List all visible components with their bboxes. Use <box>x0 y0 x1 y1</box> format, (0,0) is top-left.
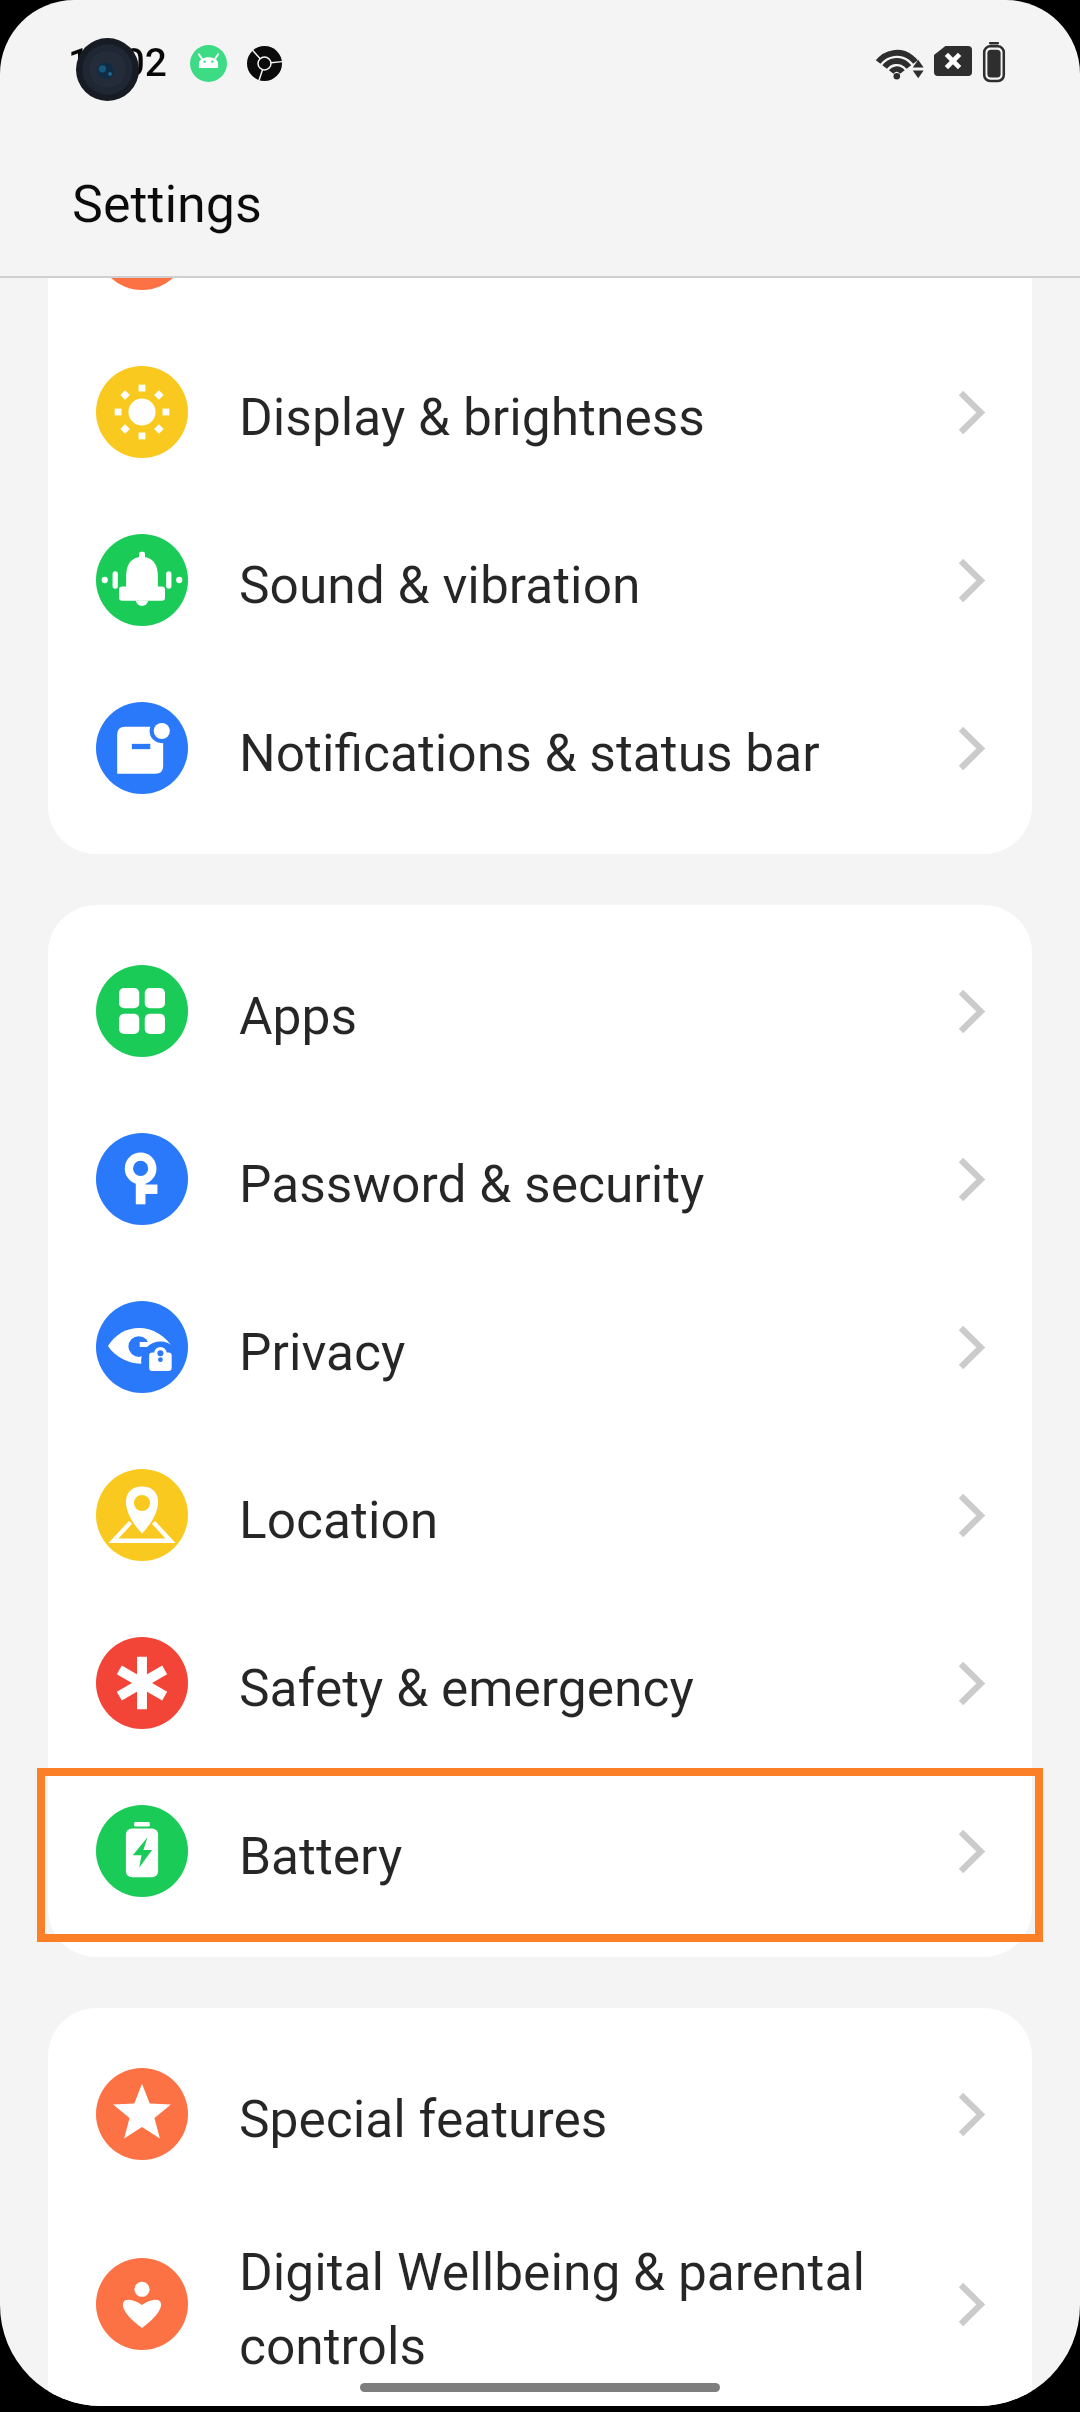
other: Open Digital Wellbeing & parental contro… <box>960 2284 984 2325</box>
staticText: 10:02 <box>68 40 168 86</box>
button[interactable]: Network <box>48 278 1032 328</box>
other: Open Apps <box>960 991 984 1032</box>
other: Chrome notification <box>247 46 282 81</box>
other: Battery <box>983 42 1005 81</box>
button[interactable]: Battery <box>48 1767 1032 1935</box>
button[interactable]: Sound <box>48 496 1032 664</box>
other: No SIM card <box>934 46 972 76</box>
other: Wi-Fi connected <box>878 41 925 81</box>
other: Special features <box>96 2068 188 2160</box>
other: Open Notifications & status bar <box>960 728 984 769</box>
other: Open Privacy <box>960 1327 984 1368</box>
button[interactable]: Privacy <box>48 1263 1032 1431</box>
staticText: Sound & vibration <box>239 555 933 615</box>
staticText: Safety & emergency <box>239 1658 933 1718</box>
button[interactable]: Display <box>48 328 1032 496</box>
staticText: Digital Wellbeing & parental controls <box>239 2242 933 2377</box>
other: Location <box>96 1469 188 1561</box>
staticText: Special features <box>239 2089 933 2149</box>
other: Battery <box>96 1805 188 1897</box>
staticText: Privacy <box>239 1322 933 1382</box>
button[interactable]: Location <box>48 1431 1032 1599</box>
other: Privacy <box>96 1301 188 1393</box>
other: Open Safety & emergency <box>960 1663 984 1704</box>
other: Wellbeing <box>96 2258 188 2350</box>
button[interactable]: Notifications <box>48 664 1032 832</box>
staticText: Password & security <box>239 1154 933 1214</box>
other: Open Special features <box>960 2094 984 2135</box>
other: Open Battery <box>960 1831 984 1872</box>
button[interactable]: Wellbeing <box>48 2198 1032 2406</box>
other: Safety <box>96 1637 188 1729</box>
other: Sound <box>96 534 188 626</box>
other: Display <box>96 366 188 458</box>
other: Apps <box>96 965 188 1057</box>
button[interactable]: Password <box>48 1095 1032 1263</box>
other: Network <box>96 278 188 290</box>
staticText: Settings <box>72 174 262 235</box>
button[interactable]: Special features <box>48 2030 1032 2198</box>
button[interactable]: Apps <box>48 927 1032 1095</box>
staticText: Location <box>239 1490 933 1550</box>
other: Android System notification <box>190 45 227 82</box>
staticText: Battery <box>239 1826 933 1886</box>
other: Password <box>96 1133 188 1225</box>
other: Open Password & security <box>960 1159 984 1200</box>
other: Open Sound & vibration <box>960 560 984 601</box>
other: Notifications <box>96 702 188 794</box>
staticText: Display & brightness <box>239 387 933 447</box>
other: Open Location <box>960 1495 984 1536</box>
other: Open Display & brightness <box>960 392 984 433</box>
button[interactable]: Safety <box>48 1599 1032 1767</box>
staticText: Apps <box>239 986 933 1046</box>
staticText: Notifications & status bar <box>239 723 933 783</box>
